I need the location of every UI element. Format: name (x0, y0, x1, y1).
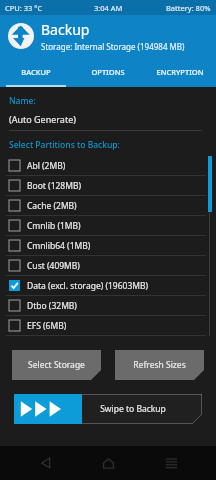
button[interactable]: Refresh Sizes (115, 350, 204, 380)
staticText: Name: (9, 95, 36, 107)
button[interactable]: OPTIONS (72, 57, 144, 87)
staticText: EFS (6MB) (27, 320, 67, 332)
staticText: Cust (409MB) (27, 260, 80, 272)
staticText: Cache (2MB) (27, 200, 77, 212)
button[interactable]: BACKUP (0, 57, 72, 87)
staticText: 3:04 AM (94, 3, 123, 13)
staticText: Cmnlib (1MB) (27, 220, 81, 232)
button[interactable]: Dtbo (32MB) (0, 296, 216, 315)
staticText: CPU: 33 °C (5, 3, 43, 13)
button[interactable]: Recent apps (154, 446, 188, 480)
staticText: Refresh Sizes (133, 359, 186, 371)
staticText: Cmnlib64 (1MB) (27, 240, 91, 252)
button[interactable]: Cust (409MB) (0, 256, 216, 275)
button[interactable]: Swipe to Backup (14, 394, 202, 424)
staticText: Storage: Internal Storage (194984 MB) (41, 41, 185, 52)
staticText: Data (excl. storage) (19603MB) (27, 280, 149, 292)
staticText: (Auto Generate) (9, 113, 76, 125)
staticText: Abl (2MB) (27, 160, 66, 172)
staticText: Dtbo (32MB) (27, 300, 77, 312)
staticText: Swipe to Backup (100, 403, 166, 415)
button[interactable]: Cmnlib (1MB) (0, 216, 216, 235)
button[interactable]: Cmnlib64 (1MB) (0, 236, 216, 255)
button[interactable]: Select Storage (12, 350, 101, 380)
staticText: Battery: 80% (166, 3, 211, 13)
button[interactable]: Back (29, 446, 63, 480)
staticText: Select Storage (28, 359, 85, 371)
staticText: Backup (41, 20, 90, 39)
staticText: Select Partitions to Backup: (9, 139, 120, 151)
staticText: BACKUP (21, 67, 51, 77)
staticText: Boot (128MB) (27, 180, 82, 192)
button[interactable]: EFS (6MB) (0, 316, 216, 335)
button[interactable]: Boot (128MB) (0, 176, 216, 195)
button[interactable]: Cache (2MB) (0, 196, 216, 215)
button[interactable]: Home (91, 446, 125, 480)
staticText: ENCRYPTION (156, 67, 204, 77)
button[interactable]: Abl (2MB) (0, 156, 216, 175)
staticText: OPTIONS (91, 67, 125, 77)
button[interactable]: ENCRYPTION (144, 57, 216, 87)
button[interactable]: Data (excl. storage) (19603MB) (0, 276, 216, 295)
